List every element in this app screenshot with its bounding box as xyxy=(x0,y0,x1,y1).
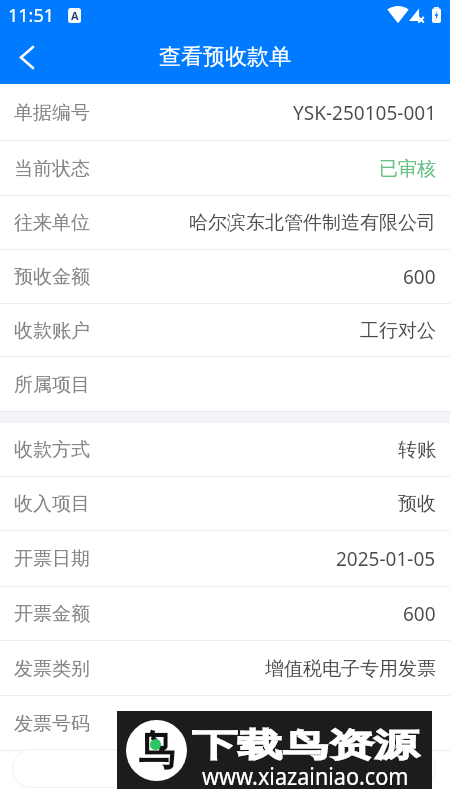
staticText: 11:51 xyxy=(8,3,55,28)
button[interactable]: 所属项目 xyxy=(0,357,450,412)
staticText: YSK-250105-001 xyxy=(293,100,436,126)
button[interactable]: 收款方式 xyxy=(0,423,450,477)
staticText: 往来单位 xyxy=(14,211,90,235)
button[interactable]: 收款账户 xyxy=(0,304,450,357)
staticText: www.xiazainiao.com xyxy=(202,760,409,791)
staticText: 收款账户 xyxy=(14,319,90,343)
staticText: 发票号码 xyxy=(14,712,90,736)
staticText: 所属项目 xyxy=(14,373,90,397)
button[interactable]: Back xyxy=(0,30,54,84)
staticText: 预收金额 xyxy=(14,265,90,289)
staticText: 查看预收款单 xyxy=(159,43,291,71)
button[interactable]: 当前状态 xyxy=(0,141,450,196)
staticText: 600 xyxy=(403,601,436,627)
button[interactable]: 单据编号 xyxy=(0,84,450,141)
button[interactable]: 收入项目 xyxy=(0,477,450,531)
staticText: 发票类别 xyxy=(14,657,90,681)
staticText: 收入项目 xyxy=(14,492,90,516)
staticText: 当前状态 xyxy=(14,157,90,181)
staticText: 收款方式 xyxy=(14,438,90,462)
staticText: 增值税电子专用发票 xyxy=(265,657,436,681)
staticText: 开票日期 xyxy=(14,547,90,571)
staticText: 工行对公 xyxy=(360,319,436,343)
staticText: A xyxy=(71,8,79,23)
staticText: 已审核 xyxy=(379,157,436,181)
button[interactable]: 开票日期 xyxy=(0,531,450,587)
staticText: 开票金额 xyxy=(14,602,90,626)
staticText: 鸟 xyxy=(138,725,175,778)
staticText: 下载鸟资源 xyxy=(192,725,419,765)
button[interactable]: 往来单位 xyxy=(0,196,450,250)
button[interactable]: 预收金额 xyxy=(0,250,450,304)
button[interactable]: 开票金额 xyxy=(0,587,450,641)
staticText: 预收 xyxy=(398,492,436,516)
button[interactable]: 发票号码 xyxy=(0,696,450,751)
staticText: 哈尔滨东北管件制造有限公司 xyxy=(189,211,436,235)
staticText: 单据编号 xyxy=(14,101,90,125)
staticText: 2025-01-05 xyxy=(336,546,436,572)
staticText: 转账 xyxy=(398,438,436,462)
button[interactable] xyxy=(12,749,436,788)
staticText: 600 xyxy=(403,264,436,290)
button[interactable]: 发票类别 xyxy=(0,641,450,696)
